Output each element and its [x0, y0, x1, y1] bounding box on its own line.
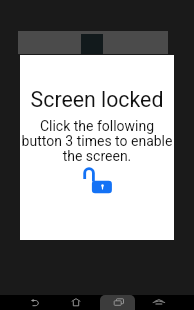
button[interactable]: Recent apps [102, 295, 134, 310]
button[interactable]: Home [60, 295, 92, 310]
button[interactable]: Back [19, 295, 51, 310]
staticText: Click the following button 3 times to en… [20, 118, 174, 165]
button[interactable]: Unlock screen [83, 167, 112, 194]
staticText: Screen locked [20, 87, 174, 112]
button[interactable]: Menu [143, 295, 175, 310]
